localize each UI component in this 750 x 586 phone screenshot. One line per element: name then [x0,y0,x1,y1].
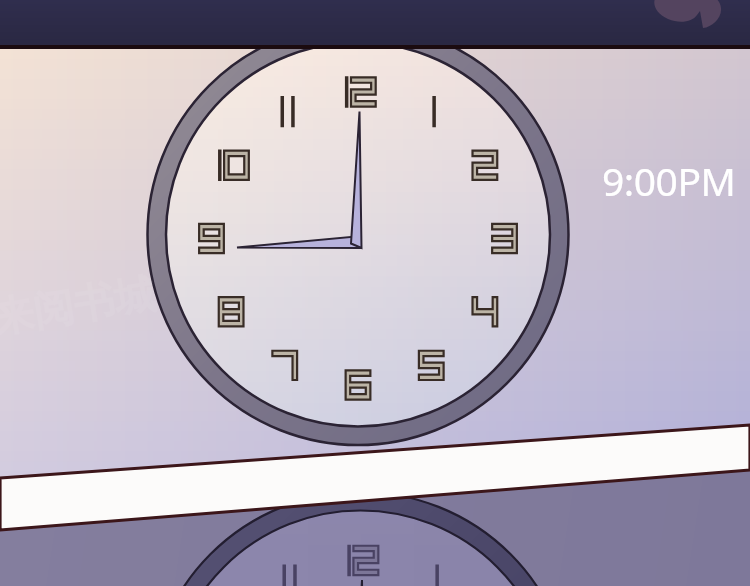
button[interactable]: Comic page: wall clock showing 9 o'clock [0,0,750,586]
staticText: 9:00PM [602,154,736,207]
staticText: 来阅书城 [0,268,159,345]
